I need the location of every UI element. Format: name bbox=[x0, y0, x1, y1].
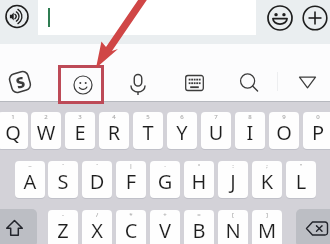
staticText: 4 bbox=[99, 113, 129, 149]
button[interactable]: 1 bbox=[0, 112, 28, 149]
button[interactable]: + bbox=[150, 210, 180, 244]
staticText: | bbox=[116, 162, 146, 198]
staticText: 0 bbox=[303, 113, 330, 149]
staticText: S bbox=[13, 71, 28, 93]
staticText: F bbox=[116, 168, 146, 198]
staticText: X bbox=[82, 217, 112, 244]
staticText: Y bbox=[167, 119, 197, 149]
staticText: E bbox=[65, 119, 95, 149]
button[interactable]: Add bbox=[302, 5, 328, 31]
staticText: [ bbox=[218, 211, 248, 244]
button[interactable]: 8 bbox=[235, 112, 265, 149]
staticText: ° bbox=[184, 162, 214, 198]
button[interactable]: Voice message bbox=[5, 4, 29, 29]
staticText: L bbox=[286, 168, 316, 198]
staticText: 8 bbox=[235, 113, 265, 149]
button[interactable]: Search bbox=[240, 73, 259, 93]
button[interactable]: = bbox=[184, 210, 214, 244]
button[interactable]: Backspace bbox=[296, 209, 330, 244]
staticText: I bbox=[235, 119, 265, 149]
staticText: " bbox=[286, 162, 316, 198]
staticText: Q bbox=[0, 119, 28, 149]
staticText: ~ bbox=[15, 162, 45, 198]
button[interactable]: * bbox=[116, 210, 146, 244]
button[interactable]: · bbox=[150, 161, 180, 198]
staticText: ` bbox=[82, 162, 112, 198]
staticText: R bbox=[99, 119, 129, 149]
button[interactable]: : bbox=[218, 161, 248, 198]
staticText: T bbox=[133, 119, 163, 149]
staticText: 5 bbox=[133, 113, 163, 149]
staticText: G bbox=[150, 168, 180, 198]
staticText: ; bbox=[252, 162, 282, 198]
staticText: ] bbox=[252, 211, 282, 244]
staticText: O bbox=[269, 119, 299, 149]
button[interactable]: ] bbox=[252, 210, 282, 244]
staticText: C bbox=[116, 217, 146, 244]
button[interactable]: Keyboard settings bbox=[185, 74, 204, 92]
staticText: 1 bbox=[0, 113, 28, 149]
button[interactable]: 5 bbox=[133, 112, 163, 149]
button[interactable]: ~ bbox=[15, 161, 45, 198]
staticText: V bbox=[150, 217, 180, 244]
button[interactable]: 0 bbox=[303, 112, 330, 149]
staticText: D bbox=[82, 168, 112, 198]
staticText: ´ bbox=[48, 162, 78, 198]
staticText: U bbox=[201, 119, 231, 149]
button[interactable]: 7 bbox=[201, 112, 231, 149]
button[interactable]: - bbox=[48, 210, 78, 244]
button[interactable] bbox=[38, 0, 256, 35]
button[interactable]: | bbox=[116, 161, 146, 198]
staticText: 2 bbox=[31, 113, 61, 149]
button[interactable]: Collapse bbox=[299, 76, 316, 89]
button[interactable]: 4 bbox=[99, 112, 129, 149]
staticText: : bbox=[218, 162, 248, 198]
staticText: W bbox=[31, 119, 61, 149]
staticText: · bbox=[150, 162, 180, 198]
button[interactable]: ; bbox=[252, 161, 282, 198]
staticText: 7 bbox=[201, 113, 231, 149]
button[interactable]: Microphone bbox=[128, 72, 148, 96]
staticText: 3 bbox=[65, 113, 95, 149]
staticText: 9 bbox=[269, 113, 299, 149]
button[interactable]: / bbox=[82, 210, 112, 244]
button[interactable]: " bbox=[286, 161, 316, 198]
button[interactable]: 2 bbox=[31, 112, 61, 149]
button[interactable]: 3 bbox=[65, 112, 95, 149]
staticText: S bbox=[48, 168, 78, 198]
button[interactable]: [ bbox=[218, 210, 248, 244]
staticText: J bbox=[218, 168, 248, 198]
staticText: A bbox=[15, 168, 45, 198]
button[interactable]: ´ bbox=[48, 161, 78, 198]
staticText: N bbox=[218, 217, 248, 244]
staticText: = bbox=[184, 211, 214, 244]
button[interactable]: Emoji keyboard bbox=[73, 75, 93, 95]
button[interactable]: ` bbox=[82, 161, 112, 198]
button[interactable]: 6 bbox=[167, 112, 197, 149]
staticText: P bbox=[303, 119, 330, 149]
button[interactable]: 9 bbox=[269, 112, 299, 149]
staticText: Z bbox=[48, 217, 78, 244]
staticText: H bbox=[184, 168, 214, 198]
button[interactable]: ° bbox=[184, 161, 214, 198]
button[interactable]: Shift bbox=[0, 209, 37, 244]
staticText: B bbox=[184, 217, 214, 244]
button[interactable]: Swype bbox=[9, 70, 31, 94]
staticText: M bbox=[252, 217, 282, 244]
staticText: / bbox=[82, 211, 112, 244]
staticText: * bbox=[116, 211, 146, 244]
button[interactable]: Emoji bbox=[267, 5, 293, 31]
staticText: K bbox=[252, 168, 282, 198]
staticText: + bbox=[150, 211, 180, 244]
staticText: - bbox=[48, 211, 78, 244]
staticText: 6 bbox=[167, 113, 197, 149]
